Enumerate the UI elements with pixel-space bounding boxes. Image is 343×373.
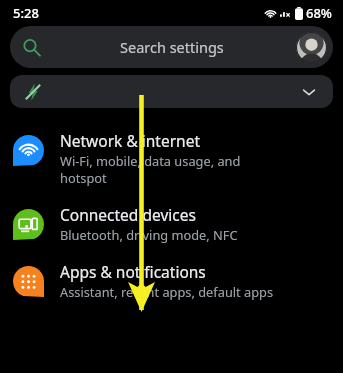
other: Expand xyxy=(301,84,317,100)
staticText: 5:28 xyxy=(13,4,39,22)
staticText: Network & internet xyxy=(60,130,200,151)
button[interactable]: Battery saver xyxy=(10,75,333,108)
button[interactable]: Apps & notifications xyxy=(0,252,343,309)
staticText: Wi-Fi, mobile, data usage, and hotspot xyxy=(60,152,241,186)
staticText: Apps & notifications xyxy=(60,261,206,282)
staticText: Connected devices xyxy=(60,204,196,225)
button[interactable]: Connected devices xyxy=(0,195,343,252)
staticText: Bluetooth, driving mode, NFC xyxy=(60,226,238,243)
other: Battery saver xyxy=(24,83,42,101)
staticText: Assistant, recent apps, default apps xyxy=(60,283,274,300)
staticText: 68% xyxy=(306,4,332,22)
button[interactable]: Account xyxy=(296,32,327,63)
button[interactable]: Network & internet xyxy=(0,121,343,195)
other: Search xyxy=(22,38,41,57)
button[interactable]: Search xyxy=(10,26,333,68)
staticText: Search settings xyxy=(120,37,224,57)
